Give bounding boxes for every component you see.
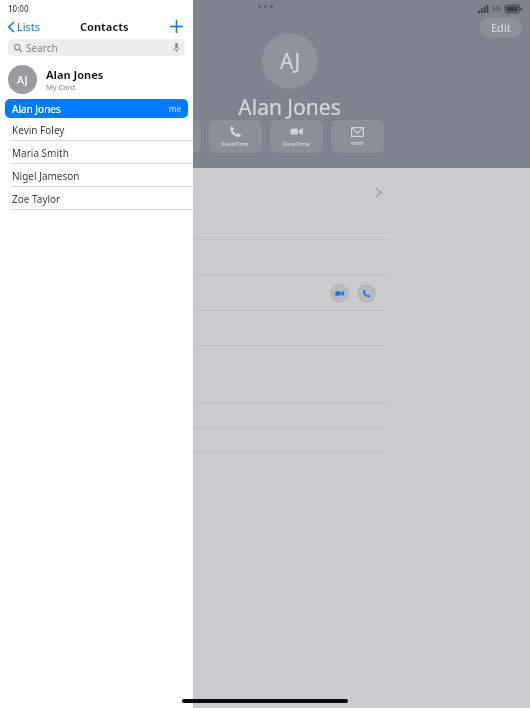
staticText: AJ <box>17 72 28 87</box>
staticText: Nigel Jameson <box>12 169 80 183</box>
staticText: message <box>162 140 188 148</box>
button[interactable]: Zoe Taylor <box>0 187 193 210</box>
button[interactable]: Maria Smith <box>0 141 193 164</box>
staticText: Contacts <box>80 19 129 34</box>
staticText: AJ <box>280 47 301 76</box>
staticText: Contact Photo & Poster <box>10 177 133 192</box>
staticText: Lists <box>17 19 41 34</box>
staticText: 5G <box>492 4 502 14</box>
button[interactable]: AJ <box>0 59 193 99</box>
button[interactable]: Kevin Foley <box>0 118 193 141</box>
button[interactable]: FaceTime <box>270 120 323 153</box>
button[interactable]: Contact Photo & Poster <box>0 168 530 240</box>
button[interactable]: FaceTime video <box>0 275 530 311</box>
button[interactable]: Send Message <box>0 403 530 428</box>
staticText: Search <box>26 41 58 55</box>
button[interactable]: Alan Jones <box>5 99 188 118</box>
button[interactable] <box>0 346 530 403</box>
staticText: Alan Jones <box>46 67 104 82</box>
button[interactable] <box>0 240 530 275</box>
staticText: Zoe Taylor <box>12 192 61 206</box>
staticText: My Card <box>46 82 76 92</box>
staticText: Edit <box>491 20 511 35</box>
button[interactable]: FaceTime <box>209 120 262 153</box>
staticText: Contacts Only <box>10 192 76 206</box>
button[interactable]: Share Contact <box>0 428 530 453</box>
staticText: FaceTime <box>222 140 249 148</box>
staticText: Maria Smith <box>12 146 69 160</box>
staticText: Kevin Foley <box>12 123 65 137</box>
button[interactable]: Call <box>357 284 376 303</box>
button[interactable]: Nigel Jameson <box>0 164 193 187</box>
button[interactable]: alanjonesm@hotmail.com <box>0 311 530 346</box>
staticText: 10:00 <box>8 3 29 14</box>
staticText: Alan Jones <box>12 102 61 116</box>
button[interactable]: Add contact <box>162 20 193 33</box>
button[interactable]: message <box>148 120 201 153</box>
staticText: FaceTime <box>283 140 310 148</box>
button[interactable]: Lists <box>0 19 47 34</box>
staticText: Alan Jones <box>238 93 341 122</box>
button[interactable]: FaceTime video <box>330 284 349 303</box>
button[interactable]: mail <box>331 120 384 153</box>
button[interactable]: Edit <box>480 17 522 38</box>
staticText: me <box>169 103 181 114</box>
staticText: mail <box>351 139 364 147</box>
button[interactable]: Search <box>8 39 185 56</box>
